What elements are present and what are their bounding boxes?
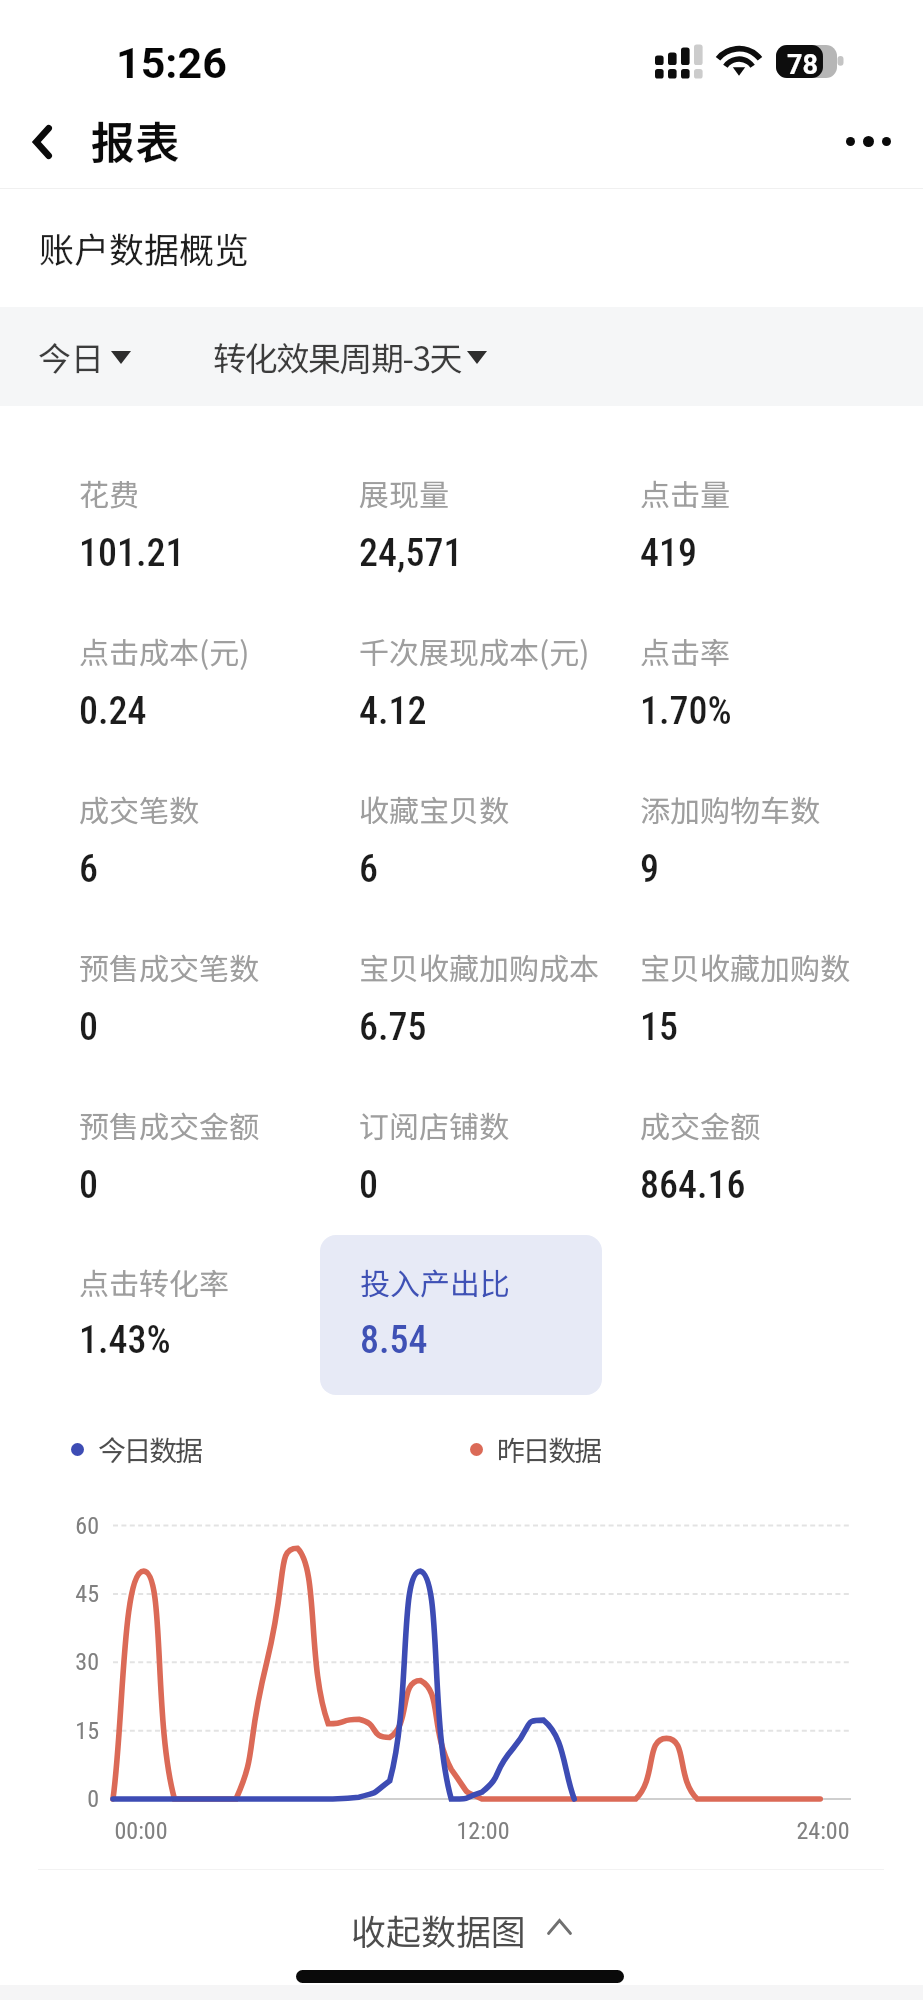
staticText: 6.75 (359, 1005, 427, 1050)
staticText: 1.70% (640, 689, 732, 734)
staticText: 0 (40, 1785, 99, 1813)
button[interactable]: 成交笔数 (79, 787, 354, 892)
staticText: 419 (640, 531, 697, 576)
staticText: 6 (359, 847, 378, 892)
staticText: 24:00 (753, 1817, 893, 1845)
staticText: 0.24 (79, 689, 147, 734)
staticText: 9 (640, 847, 659, 892)
button[interactable]: 成交金额 (640, 1103, 890, 1208)
staticText: 0 (359, 1163, 378, 1208)
staticText: 投入产出比 (360, 1260, 510, 1303)
staticText: 24,571 (359, 531, 463, 576)
button[interactable]: More options (830, 103, 906, 179)
button[interactable]: 转化效果周期-3天 (213, 333, 487, 381)
button[interactable]: 展现量 (359, 471, 634, 576)
staticText: 收起数据图 (351, 1904, 527, 1955)
button[interactable]: 收起数据图 (351, 1904, 572, 1955)
button[interactable]: 订阅店铺数 (359, 1103, 634, 1208)
staticText: 点击量 (640, 471, 730, 514)
staticText: 0 (79, 1005, 98, 1050)
button[interactable]: 投入产出比 (320, 1235, 602, 1395)
staticText: 点击成本(元) (79, 629, 250, 672)
staticText: 点击转化率 (79, 1260, 229, 1303)
staticText: 预售成交笔数 (79, 945, 259, 988)
button[interactable]: 账户数据概览 (39, 222, 250, 273)
staticText: 点击率 (640, 629, 730, 672)
staticText: 预售成交金额 (79, 1103, 259, 1146)
staticText: 添加购物车数 (640, 787, 820, 830)
staticText: 千次展现成本(元) (359, 629, 590, 672)
button[interactable]: 点击率 (640, 629, 890, 734)
button[interactable]: 点击转化率 (79, 1260, 279, 1363)
staticText: 15:26 (116, 38, 227, 88)
button[interactable]: 预售成交金额 (79, 1103, 354, 1208)
staticText: 成交笔数 (79, 787, 199, 830)
staticText: 报表 (91, 108, 179, 172)
staticText: 6 (79, 847, 98, 892)
button[interactable]: 宝贝收藏加购成本 (359, 945, 634, 1050)
staticText: 12:00 (413, 1817, 553, 1845)
button[interactable]: 点击量 (640, 471, 890, 576)
staticText: 花费 (79, 471, 139, 514)
button[interactable]: 花费 (79, 471, 354, 576)
button[interactable]: 千次展现成本(元) (359, 629, 634, 734)
staticText: 订阅店铺数 (359, 1103, 509, 1146)
staticText: 1.43% (79, 1318, 171, 1363)
button[interactable]: Back (6, 106, 78, 178)
staticText: 60 (40, 1512, 99, 1540)
button[interactable]: 点击成本(元) (79, 629, 354, 734)
staticText: 0 (79, 1163, 98, 1208)
staticText: 864.16 (640, 1163, 746, 1208)
staticText: 展现量 (359, 471, 449, 514)
button[interactable]: 今日数据 (71, 1429, 201, 1470)
staticText: 转化效果周期-3天 (213, 333, 462, 381)
staticText: 45 (40, 1580, 99, 1608)
staticText: 收藏宝贝数 (359, 787, 509, 830)
staticText: 8.54 (360, 1318, 428, 1363)
button[interactable]: 收藏宝贝数 (359, 787, 634, 892)
staticText: 宝贝收藏加购成本 (359, 945, 599, 988)
button[interactable]: 今日 (38, 333, 131, 381)
staticText: 30 (40, 1648, 99, 1676)
staticText: 00:00 (71, 1817, 211, 1845)
staticText: 今日 (38, 333, 104, 381)
staticText: 宝贝收藏加购数 (640, 945, 850, 988)
staticText: 成交金额 (640, 1103, 760, 1146)
staticText: 今日数据 (98, 1429, 201, 1470)
button[interactable]: 预售成交笔数 (79, 945, 354, 1050)
staticText: 15 (40, 1717, 99, 1745)
staticText: 昨日数据 (497, 1429, 600, 1470)
staticText: 15 (640, 1005, 678, 1050)
staticText: 101.21 (79, 531, 185, 576)
staticText: 4.12 (359, 689, 427, 734)
button[interactable]: 宝贝收藏加购数 (640, 945, 890, 1050)
button[interactable]: 昨日数据 (470, 1429, 600, 1470)
button[interactable]: 添加购物车数 (640, 787, 890, 892)
staticText: 78 (787, 49, 818, 81)
